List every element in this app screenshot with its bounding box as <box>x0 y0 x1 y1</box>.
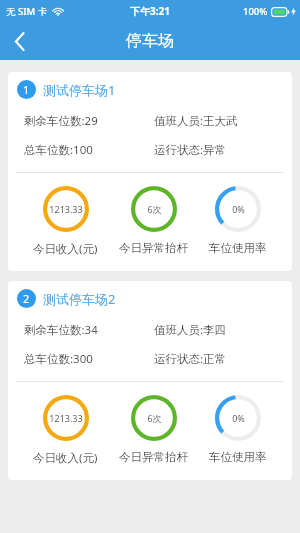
staticText: 总车位数:100 <box>24 142 154 158</box>
staticText: 停车场 <box>126 31 174 51</box>
staticText: 测试停车场1 <box>43 81 116 99</box>
staticText: 100% <box>243 5 268 18</box>
staticText: 1 <box>23 82 30 97</box>
staticText: 运行状态:正常 <box>154 351 284 367</box>
button[interactable]: 1 <box>8 72 292 271</box>
staticText: 0% <box>232 412 245 424</box>
staticText: 车位使用率 <box>209 450 267 464</box>
staticText: 今日异常抬杆 <box>119 450 188 464</box>
staticText: 1213.33 <box>49 412 83 424</box>
staticText: 今日收入(元) <box>33 241 98 257</box>
staticText: 今日收入(元) <box>33 450 98 466</box>
staticText: 2 <box>23 291 30 306</box>
staticText: 6次 <box>147 203 162 215</box>
staticText: 总车位数:300 <box>24 351 154 367</box>
button[interactable]: 返回 <box>0 22 40 60</box>
staticText: 值班人员:李四 <box>154 322 284 338</box>
staticText: 车位使用率 <box>209 241 267 255</box>
staticText: 剩余车位数:29 <box>24 113 154 129</box>
staticText: 测试停车场2 <box>43 290 116 308</box>
button[interactable]: 2 <box>8 281 292 480</box>
staticText: 6次 <box>147 412 162 424</box>
staticText: 运行状态:异常 <box>154 142 284 158</box>
staticText: 下午3:21 <box>130 4 170 18</box>
staticText: 今日异常抬杆 <box>119 241 188 255</box>
staticText: 值班人员:王大武 <box>154 113 284 129</box>
staticText: 无 SIM 卡 <box>6 5 48 18</box>
staticText: 剩余车位数:34 <box>24 322 154 338</box>
staticText: 0% <box>232 203 245 215</box>
staticText: 1213.33 <box>49 203 83 215</box>
